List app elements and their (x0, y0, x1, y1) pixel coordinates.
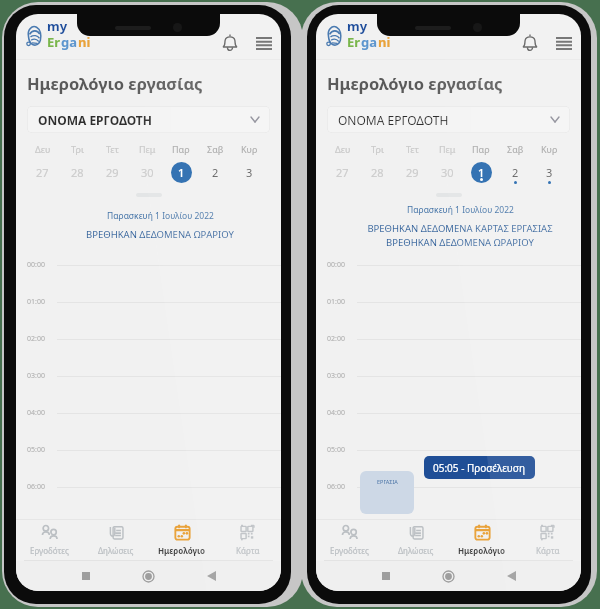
button[interactable]: Δηλώσεις (383, 520, 449, 560)
button[interactable]: Μενού (552, 31, 576, 55)
button[interactable]: Ειδοποιήσεις (518, 31, 542, 55)
staticText: 27 (336, 165, 349, 180)
button[interactable]: Εργοδότες (316, 520, 383, 560)
staticText: Κάρτα (536, 545, 560, 556)
staticText: ga (361, 33, 378, 51)
button[interactable]: Κάρτα (215, 520, 281, 560)
button[interactable]: 29 (95, 161, 130, 183)
button[interactable]: 3 (532, 161, 566, 183)
staticText: Δηλώσεις (98, 545, 134, 556)
staticText: 02:00 (327, 334, 345, 344)
button[interactable]: 30 (430, 161, 464, 183)
button[interactable]: 30 (130, 161, 164, 183)
button[interactable]: Ημερολόγιο (149, 520, 215, 560)
staticText: 1 (478, 165, 485, 180)
staticText: ni (378, 33, 391, 51)
staticText: 28 (371, 165, 384, 180)
staticText: Παρασκευή 1 Ιουλίου 2022 (407, 204, 514, 216)
staticText: Er (347, 33, 361, 51)
staticText: Κυρ (241, 143, 258, 155)
staticText: Τετ (406, 143, 420, 155)
staticText: 1 (178, 165, 185, 180)
staticText: 2 (512, 165, 519, 180)
staticText: ni (78, 33, 91, 51)
staticText: ΒΡΕΘΗΚΑΝ ΔΕΔΟΜΕΝΑ ΚΑΡΤΑΣ ΕΡΓΑΣΙΑΣ (367, 222, 553, 235)
staticText: 3 (546, 165, 553, 180)
button[interactable]: 1 (164, 161, 198, 183)
button[interactable]: Πίσω (507, 571, 516, 581)
button[interactable]: Δηλώσεις (83, 520, 149, 560)
staticText: Κυρ (541, 143, 558, 155)
button[interactable]: Αρχική (142, 570, 155, 583)
button[interactable]: 2 (198, 161, 232, 183)
button[interactable]: 29 (395, 161, 430, 183)
staticText: Er (47, 33, 61, 51)
button[interactable]: 2 (498, 161, 532, 183)
staticText: 27 (36, 165, 49, 180)
button[interactable]: Αρχική (442, 570, 455, 583)
staticText: Εργοδότες (30, 545, 69, 556)
button[interactable]: ΟΝΟΜΑ ΕΡΓΟΔΟΤΗ (27, 106, 270, 133)
button[interactable]: Πίσω (207, 571, 216, 581)
staticText: 06:00 (27, 482, 45, 492)
staticText: Παρασκευή 1 Ιουλίου 2022 (107, 210, 214, 222)
button[interactable]: 3 (232, 161, 266, 183)
staticText: Ημερολόγιο εργασίας (27, 72, 203, 94)
staticText: 02:00 (27, 334, 45, 344)
staticText: 01:00 (327, 297, 345, 307)
staticText: 2 (212, 165, 219, 180)
staticText: 29 (406, 165, 419, 180)
staticText: 00:00 (27, 260, 45, 270)
staticText: Τρι (71, 143, 84, 155)
button[interactable]: 28 (60, 161, 95, 183)
staticText: Ημερολόγιο (158, 545, 206, 556)
staticText: 30 (441, 165, 454, 180)
staticText: ΒΡΕΘΗΚΑΝ ΔΕΔΟΜΕΝΑ ΩΡΑΡΙΟΥ (86, 228, 234, 241)
staticText: Σαβ (207, 143, 224, 155)
button[interactable]: 05:05 - Προσέλευση (424, 456, 535, 479)
staticText: Εργοδότες (330, 545, 369, 556)
staticText: 00:00 (327, 260, 345, 270)
button[interactable]: ΟΝΟΜΑ ΕΡΓΟΔΟΤΗ (327, 106, 570, 133)
button[interactable]: Μενού (252, 31, 276, 55)
button[interactable]: 27 (325, 161, 360, 183)
staticText: Παρ (472, 143, 490, 155)
staticText: 3 (246, 165, 253, 180)
staticText: Πεμ (439, 143, 456, 155)
staticText: Δευ (35, 143, 51, 155)
staticText: Δηλώσεις (398, 545, 434, 556)
staticText: 28 (71, 165, 84, 180)
staticText: Ημερολόγιο (458, 545, 506, 556)
staticText: my (47, 17, 68, 35)
button[interactable]: Ημερολόγιο (449, 520, 515, 560)
staticText: 30 (141, 165, 154, 180)
staticText: Τετ (106, 143, 120, 155)
staticText: ΕΡΓΑΣΙΑ (377, 478, 398, 485)
staticText: ΒΡΕΘΗΚΑΝ ΔΕΔΟΜΕΝΑ ΩΡΑΡΙΟΥ (386, 236, 534, 249)
button[interactable]: 28 (360, 161, 395, 183)
staticText: 04:00 (327, 408, 345, 418)
button[interactable]: Κάρτα (515, 520, 581, 560)
staticText: 01:00 (27, 297, 45, 307)
staticText: 05:00 (27, 445, 45, 455)
staticText: Ημερολόγιο εργασίας (327, 72, 503, 94)
staticText: ΟΝΟΜΑ ΕΡΓΟΔΟΤΗ (338, 112, 449, 128)
staticText: 04:00 (27, 408, 45, 418)
button[interactable]: Ειδοποιήσεις (218, 31, 242, 55)
staticText: ga (61, 33, 78, 51)
staticText: 03:00 (27, 371, 45, 381)
staticText: Κάρτα (236, 545, 260, 556)
button[interactable]: 1 (464, 161, 498, 183)
staticText: my (347, 17, 368, 35)
staticText: 06:00 (327, 482, 345, 492)
staticText: Δευ (335, 143, 351, 155)
button[interactable]: 27 (25, 161, 60, 183)
staticText: 05:00 (327, 445, 345, 455)
button[interactable]: Εργοδότες (16, 520, 83, 560)
staticText: Σαβ (507, 143, 524, 155)
staticText: 03:00 (327, 371, 345, 381)
staticText: 05:05 - Προσέλευση (433, 461, 526, 475)
staticText: Τρι (371, 143, 384, 155)
